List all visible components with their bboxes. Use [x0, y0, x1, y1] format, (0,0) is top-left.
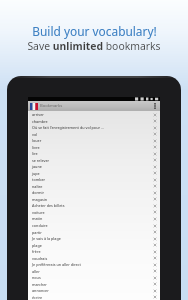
button[interactable]: Remove bookmark [152, 131, 158, 137]
staticText: Build your vocabulary! [32, 23, 157, 39]
button[interactable]: Remove bookmark [152, 196, 158, 202]
button[interactable]: More options [151, 101, 158, 111]
button[interactable]: jupe [28, 170, 160, 176]
staticText: tomber [32, 177, 152, 182]
button[interactable]: écrire [28, 294, 160, 300]
button[interactable]: magasin [28, 196, 160, 202]
button[interactable]: Remove bookmark [152, 223, 158, 229]
button[interactable]: Remove bookmark [152, 249, 158, 255]
button[interactable]: Remove bookmark [152, 144, 158, 150]
button[interactable]: conduire [28, 222, 160, 229]
button[interactable]: Remove bookmark [152, 177, 158, 183]
button[interactable]: aller [28, 268, 160, 274]
staticText: livre [32, 145, 152, 150]
button[interactable]: Remove bookmark [152, 138, 158, 144]
button[interactable]: dormir [28, 189, 160, 196]
staticText: magasin [32, 197, 152, 202]
staticText: Bookmarks [40, 103, 63, 109]
button[interactable]: Remove bookmark [152, 151, 158, 157]
staticText: Je préférerais un aller direct [32, 262, 152, 267]
button[interactable]: Remove bookmark [152, 118, 158, 124]
staticText: louer [32, 138, 152, 143]
button[interactable]: Remove bookmark [152, 164, 158, 170]
button[interactable]: Remove bookmark [152, 216, 158, 222]
button[interactable]: Remove bookmark [152, 268, 158, 274]
button[interactable]: Remove bookmark [152, 125, 158, 131]
staticText: dormir [32, 190, 152, 195]
staticText: naître [32, 184, 152, 189]
button[interactable]: nous [28, 274, 160, 281]
button[interactable]: lire [28, 150, 160, 157]
button[interactable]: Remove bookmark [152, 281, 158, 287]
button[interactable]: Remove bookmark [152, 242, 158, 248]
staticText: Je vais à la plage [32, 236, 152, 241]
button[interactable]: chambre [28, 118, 160, 124]
button[interactable]: Acheter des billets [28, 202, 160, 209]
staticText: lire [32, 151, 152, 156]
button[interactable]: Remove bookmark [152, 190, 158, 196]
staticText: voiture [32, 210, 152, 215]
button[interactable]: voiture [28, 209, 160, 215]
button[interactable]: Où se fait l'enregistrement du vol pour … [28, 124, 160, 131]
staticText: annoncer [32, 288, 152, 293]
button[interactable]: voudrais [28, 255, 160, 261]
button[interactable]: jaune [28, 163, 160, 170]
staticText: vol [32, 132, 152, 137]
button[interactable]: partir [28, 229, 160, 235]
button[interactable]: annoncer [28, 287, 160, 294]
button[interactable]: Remove bookmark [152, 255, 158, 261]
staticText: arriver [32, 112, 152, 117]
staticText: chambre [32, 119, 152, 124]
staticText: matin [32, 216, 152, 221]
button[interactable]: Remove bookmark [152, 275, 158, 281]
staticText: Save unlimited bookmarks [27, 39, 161, 53]
staticText: Où se fait l'enregistrement du vol pour … [32, 125, 152, 130]
button[interactable]: frère [28, 248, 160, 255]
button[interactable]: Remove bookmark [152, 262, 158, 268]
button[interactable]: vol [28, 131, 160, 137]
button[interactable]: arriver [28, 111, 160, 118]
staticText: frère [32, 249, 152, 254]
button[interactable]: Remove bookmark [152, 183, 158, 189]
staticText: jaune [32, 164, 152, 169]
button[interactable]: Je préférerais un aller direct [28, 261, 160, 268]
button[interactable]: Bookmarks [28, 101, 160, 111]
staticText: jupe [32, 171, 152, 176]
button[interactable]: Remove bookmark [152, 236, 158, 242]
button[interactable]: Remove bookmark [152, 157, 158, 163]
button[interactable]: louer [28, 137, 160, 144]
button[interactable]: matin [28, 215, 160, 222]
button[interactable]: Remove bookmark [152, 203, 158, 209]
button[interactable]: tomber [28, 176, 160, 183]
button[interactable]: Je vais à la plage [28, 235, 160, 242]
staticText: plage [32, 243, 152, 248]
button[interactable]: Remove bookmark [152, 170, 158, 176]
button[interactable]: livre [28, 144, 160, 150]
button[interactable]: Remove bookmark [152, 294, 158, 300]
staticText: conduire [32, 223, 152, 228]
staticText: Acheter des billets [32, 203, 152, 208]
staticText: se relever [32, 158, 152, 163]
button[interactable]: naître [28, 183, 160, 189]
staticText: aller [32, 269, 152, 274]
button[interactable]: plage [28, 242, 160, 248]
button[interactable]: marcher [28, 281, 160, 287]
staticText: écrire [32, 295, 152, 300]
button[interactable]: se relever [28, 157, 160, 163]
button[interactable]: Remove bookmark [152, 288, 158, 294]
staticText: voudrais [32, 256, 152, 261]
button[interactable]: Remove bookmark [152, 112, 158, 118]
button[interactable]: Remove bookmark [152, 229, 158, 235]
staticText: marcher [32, 282, 152, 287]
staticText: nous [32, 275, 152, 280]
staticText: partir [32, 230, 152, 235]
button[interactable]: Remove bookmark [152, 209, 158, 215]
